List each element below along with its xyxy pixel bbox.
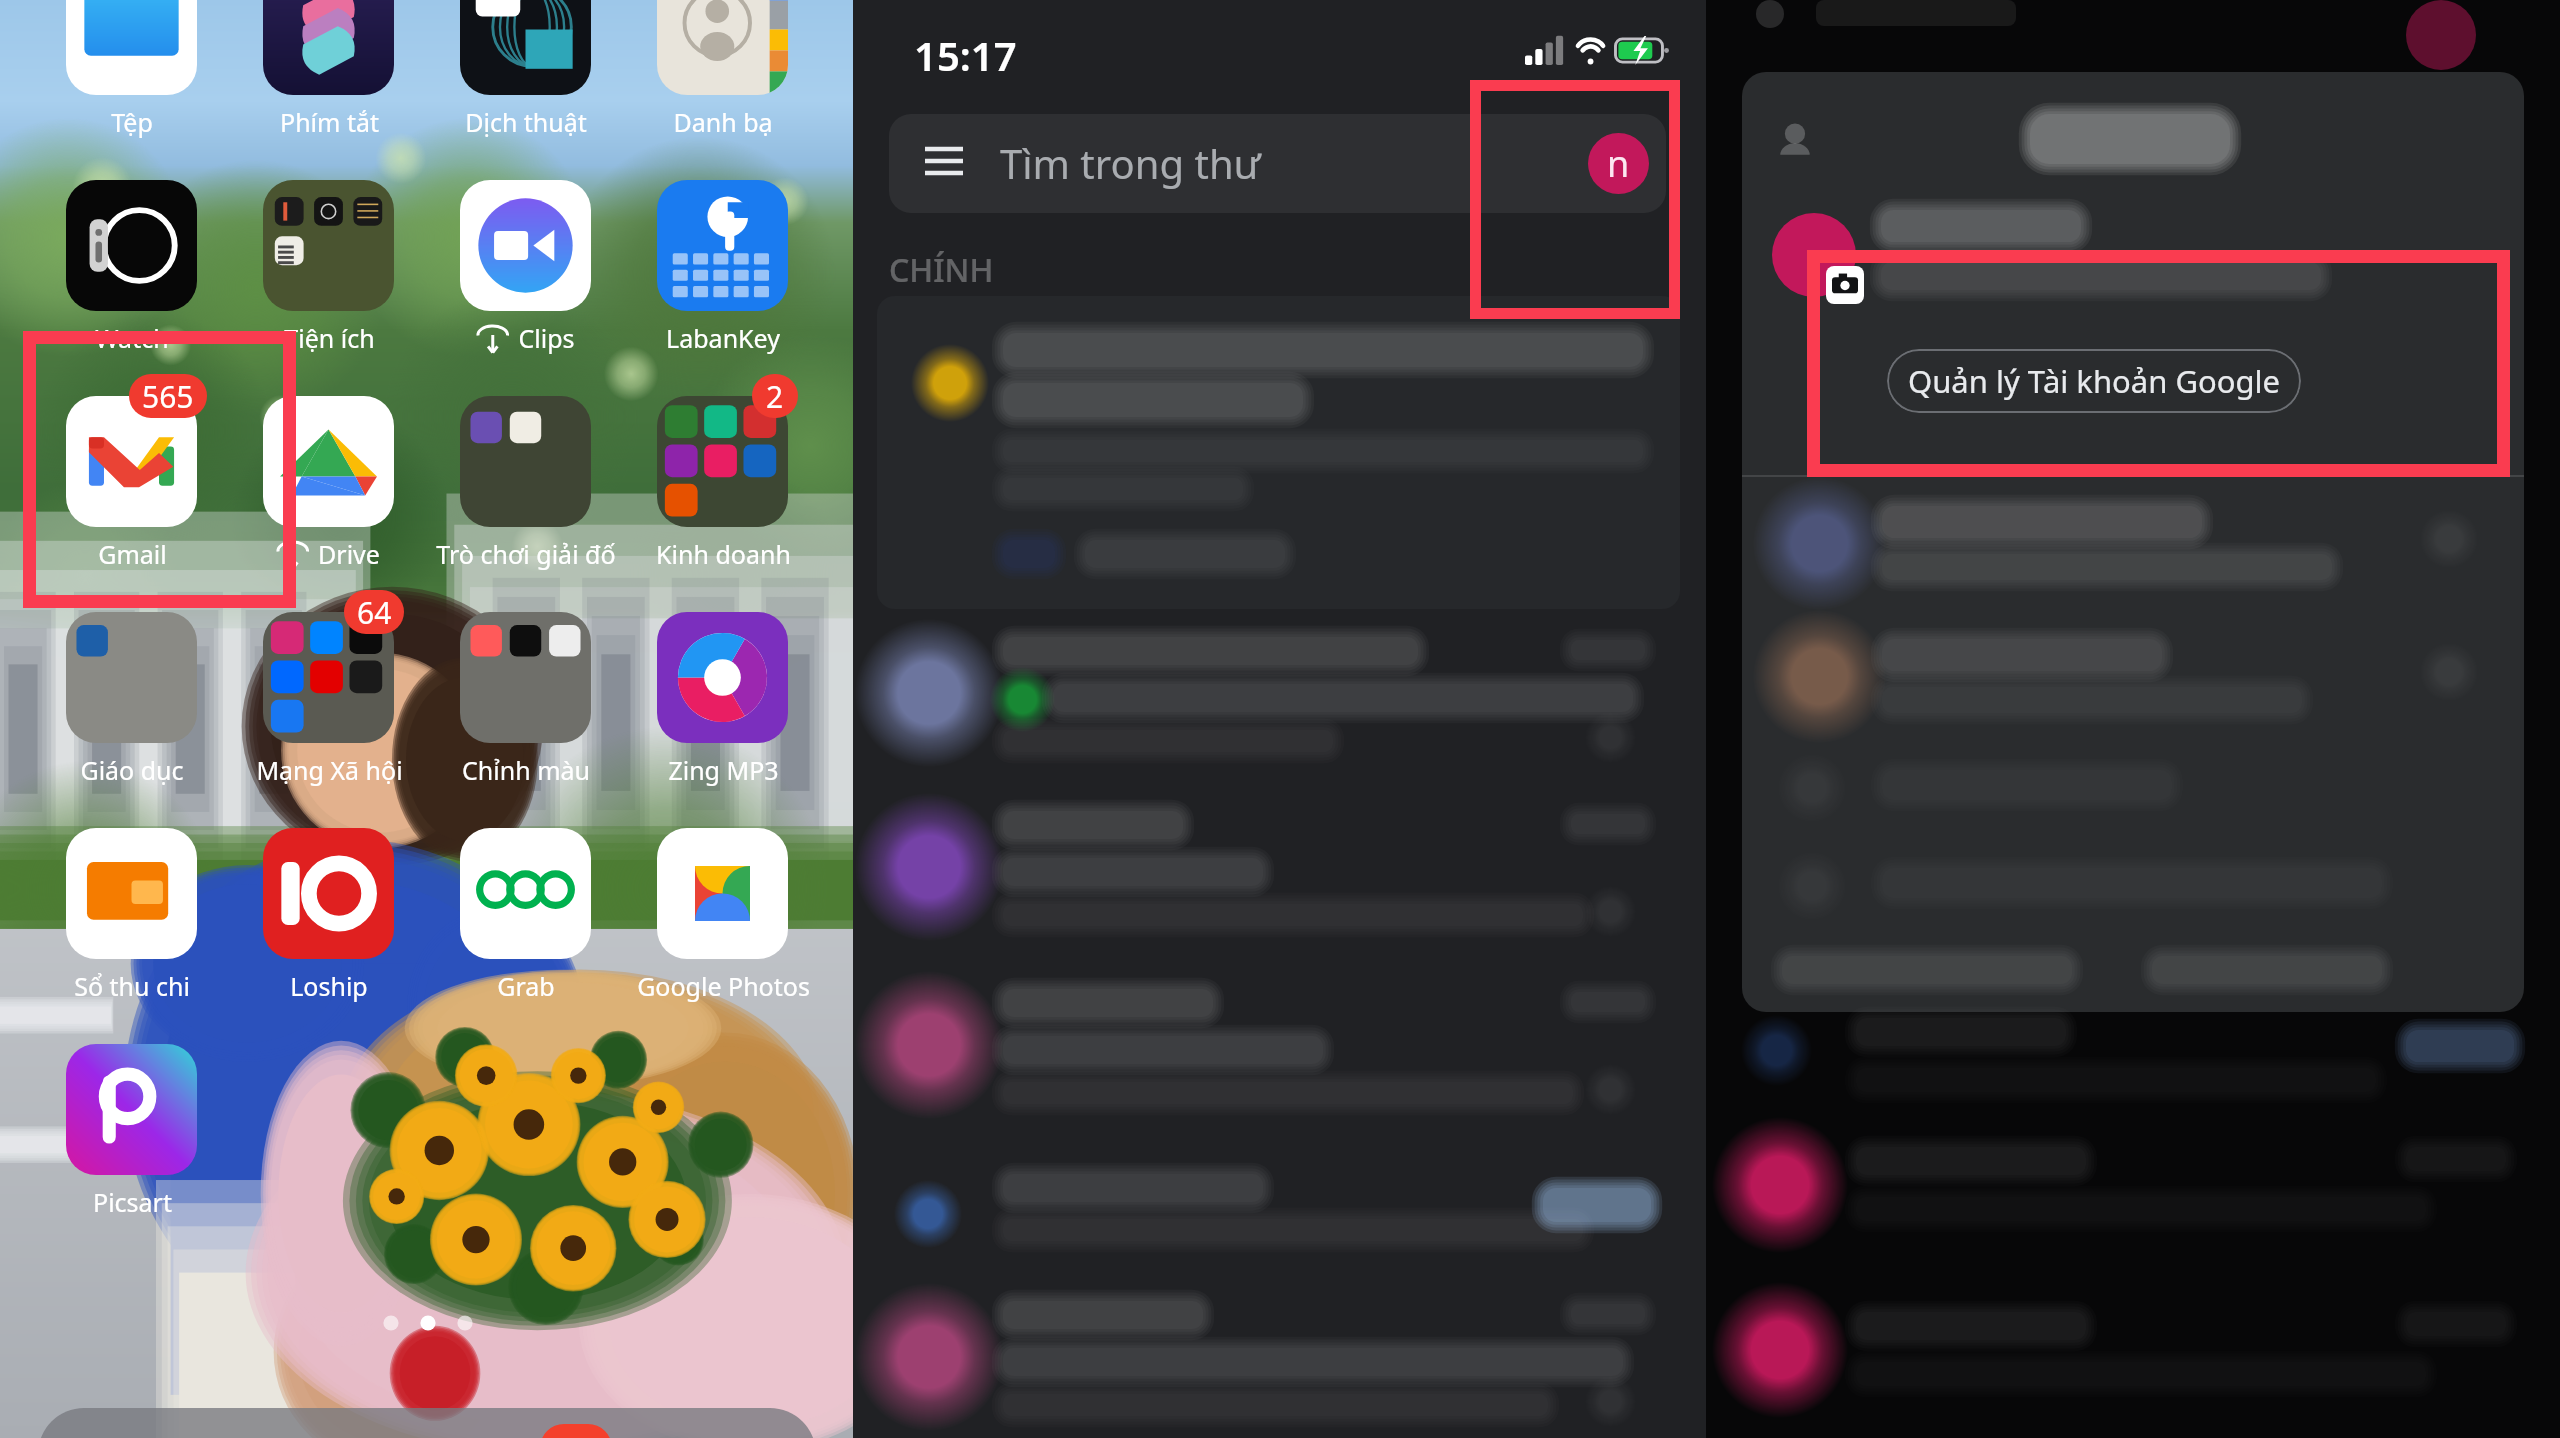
staticText: Zing MP3 <box>668 753 779 787</box>
button[interactable]: Close <box>1764 110 1826 172</box>
staticText: LabanKey <box>666 321 780 355</box>
staticText: 565 <box>142 376 194 417</box>
staticText: Kinh doanh <box>656 537 791 571</box>
staticText: Trò chơi giải đố <box>436 537 616 571</box>
button[interactable]: Trò chơi giải đố <box>460 396 591 577</box>
staticText: Loship <box>290 969 368 1003</box>
button[interactable]: Gmail <box>66 396 197 577</box>
staticText: CHÍNH <box>889 248 994 292</box>
button[interactable]: Phím tắt <box>263 0 394 145</box>
staticText: Google Photos <box>637 969 810 1003</box>
staticText: Watch <box>95 321 169 355</box>
staticText: Clips <box>518 321 575 355</box>
button[interactable]: Sổ thu chi <box>66 828 197 1009</box>
button[interactable]: Giáo dục <box>66 612 197 793</box>
button[interactable]: Picsart <box>66 1044 197 1225</box>
button[interactable]: Zing MP3 <box>657 612 788 793</box>
staticText: Mạng Xã hội <box>256 753 403 787</box>
button[interactable] <box>877 296 1680 609</box>
staticText: Tệp <box>111 105 153 139</box>
button[interactable] <box>853 1286 1706 1438</box>
staticText: Sổ thu chi <box>74 969 190 1003</box>
button[interactable]: Menu <box>889 114 1666 213</box>
button[interactable]: Chỉnh màu <box>460 612 591 793</box>
button[interactable]: Clips <box>460 180 591 361</box>
button[interactable]: Danh bạ <box>657 0 788 145</box>
staticText: Danh bạ <box>673 105 773 139</box>
button[interactable]: LabanKey <box>657 180 788 361</box>
button[interactable]: Grab <box>460 828 591 1009</box>
button[interactable] <box>853 974 1706 1134</box>
staticText: Gmail <box>98 537 167 571</box>
button[interactable]: Account <box>1588 133 1649 194</box>
staticText: Chỉnh màu <box>462 753 590 787</box>
button[interactable]: Watch <box>66 180 197 361</box>
button[interactable]: Google Photos <box>657 828 788 1009</box>
staticText: Phím tắt <box>280 105 379 139</box>
staticText: 64 <box>357 592 392 633</box>
staticText: Giáo dục <box>80 753 184 787</box>
staticText: 15:17 <box>914 28 1017 82</box>
staticText: Dịch thuật <box>465 105 587 139</box>
staticText: Picsart <box>93 1185 172 1219</box>
button[interactable]: Tệp <box>66 0 197 145</box>
staticText: n <box>1607 139 1630 188</box>
button[interactable] <box>853 796 1706 956</box>
button[interactable] <box>853 622 1706 782</box>
button[interactable]: Change profile photo <box>1826 266 1864 304</box>
staticText: Quản lý Tài khoản Google <box>1908 360 2281 402</box>
staticText: Tiện ích <box>284 321 375 355</box>
button[interactable]: Kinh doanh <box>657 396 788 577</box>
button[interactable]: Quản lý Tài khoản Google <box>1887 349 2301 413</box>
button[interactable]: Loship <box>263 828 394 1009</box>
staticText: Drive <box>318 537 380 571</box>
other: Menu <box>925 146 963 176</box>
button[interactable]: Mạng Xã hội <box>263 612 394 793</box>
button[interactable]: Tiện ích <box>263 180 394 361</box>
button[interactable] <box>853 1154 1706 1284</box>
staticText: Tìm trong thư <box>1000 136 1261 190</box>
button[interactable]: Dịch thuật <box>460 0 591 145</box>
staticText: 2 <box>766 376 784 417</box>
staticText: Grab <box>497 969 555 1003</box>
button[interactable]: Drive <box>263 396 394 577</box>
